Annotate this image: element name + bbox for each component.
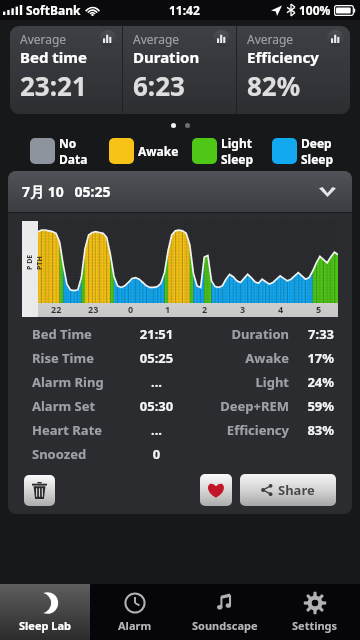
button[interactable]: Soundscape bbox=[180, 584, 270, 640]
button[interactable]: Show chart bbox=[99, 30, 116, 47]
button[interactable]: Sleep Lab bbox=[0, 584, 90, 640]
staticText: Sleep bbox=[221, 151, 254, 167]
button[interactable]: Show chart bbox=[327, 30, 344, 47]
staticText: Data bbox=[59, 151, 88, 167]
button[interactable]: Alarm bbox=[90, 584, 180, 640]
button[interactable]: Show chart bbox=[213, 30, 230, 47]
staticText: 0 bbox=[128, 303, 134, 315]
staticText: 17% bbox=[298, 349, 334, 367]
button[interactable]: Average bbox=[237, 26, 350, 114]
staticText: Share bbox=[278, 481, 315, 499]
staticText: Soundscape bbox=[192, 618, 258, 633]
staticText: Awake bbox=[138, 143, 179, 159]
staticText: 2 bbox=[202, 303, 208, 315]
staticText: Efficiency bbox=[247, 47, 319, 67]
staticText: Heart Rate bbox=[32, 421, 123, 439]
staticText: Bed time bbox=[20, 47, 87, 67]
staticText: 21:51 bbox=[123, 325, 190, 343]
staticText: 3 bbox=[240, 303, 246, 315]
button[interactable]: 7月 10 05:25 bbox=[8, 171, 352, 212]
staticText: Average bbox=[20, 31, 67, 47]
staticText: 23:21 bbox=[20, 68, 87, 103]
staticText: 59% bbox=[298, 397, 334, 415]
staticText: 1 bbox=[165, 303, 171, 315]
staticText: Settings bbox=[292, 618, 338, 633]
staticText: Alarm bbox=[118, 618, 152, 633]
staticText: Average bbox=[133, 31, 180, 47]
staticText: Average bbox=[247, 31, 294, 47]
staticText: 23 bbox=[88, 303, 99, 315]
staticText: 0 bbox=[123, 445, 190, 463]
staticText: 83% bbox=[298, 421, 334, 439]
button[interactable]: Settings bbox=[270, 584, 360, 640]
staticText: Alarm Ring bbox=[32, 373, 123, 391]
staticText: ... bbox=[123, 373, 190, 391]
staticText: 24% bbox=[298, 373, 334, 391]
staticText: Duration bbox=[133, 47, 200, 67]
staticText: Bed Time bbox=[32, 325, 123, 343]
staticText: Duration bbox=[190, 325, 289, 343]
staticText: 5 bbox=[316, 303, 322, 315]
staticText: Sleep Lab bbox=[19, 618, 71, 633]
staticText: Sleep bbox=[301, 151, 334, 167]
staticText: SLEEP DEPTH bbox=[15, 254, 45, 270]
button[interactable]: Favorite bbox=[200, 474, 232, 506]
staticText: 100% bbox=[299, 2, 331, 18]
staticText: ... bbox=[123, 421, 190, 439]
staticText: 22 bbox=[51, 303, 62, 315]
staticText: 6:23 bbox=[133, 68, 185, 103]
staticText: Deep+REM bbox=[190, 397, 289, 415]
staticText: 7:33 bbox=[298, 325, 334, 343]
button[interactable]: Average bbox=[10, 26, 122, 114]
staticText: Snoozed bbox=[32, 445, 123, 463]
staticText: 11:42 bbox=[169, 2, 200, 18]
button[interactable]: Delete bbox=[24, 475, 55, 506]
staticText: Deep bbox=[301, 135, 332, 151]
staticText: Light bbox=[221, 135, 252, 151]
staticText: SoftBank bbox=[26, 2, 81, 18]
staticText: 7月 10 05:25 bbox=[22, 182, 111, 201]
staticText: 4 bbox=[278, 303, 284, 315]
staticText: Awake bbox=[190, 349, 289, 367]
staticText: 05:25 bbox=[123, 349, 190, 367]
button[interactable]: Average bbox=[123, 26, 236, 114]
staticText: 82% bbox=[247, 68, 301, 103]
staticText: Efficiency bbox=[190, 421, 289, 439]
staticText: Light bbox=[190, 373, 289, 391]
button[interactable]: Share bbox=[240, 474, 336, 506]
staticText: No bbox=[59, 135, 77, 151]
staticText: 05:30 bbox=[123, 397, 190, 415]
staticText: Rise Time bbox=[32, 349, 123, 367]
staticText: Alarm Set bbox=[32, 397, 123, 415]
